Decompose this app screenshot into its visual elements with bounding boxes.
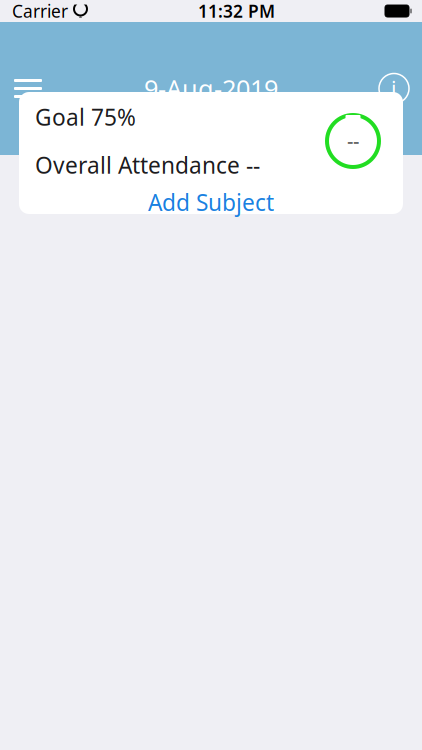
button[interactable]: Information — [366, 63, 422, 113]
staticText: Carrier — [12, 0, 68, 22]
staticText: Overall Attendance -- — [35, 150, 260, 180]
staticText: Add Subject — [148, 187, 274, 217]
button[interactable]: Add Subject — [19, 180, 403, 224]
staticText: 11:32 PM — [198, 0, 275, 22]
staticText: Goal 75% — [35, 102, 136, 132]
staticText: -- — [347, 128, 359, 154]
staticText: i — [391, 74, 397, 103]
staticText: 9-Aug-2019 — [144, 72, 278, 105]
button[interactable]: Menu — [0, 63, 56, 113]
